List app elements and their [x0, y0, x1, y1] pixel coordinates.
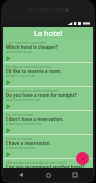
staticText: aid laik tu ri-serv a rum	[6, 74, 36, 78]
button[interactable]: Ameli a cuarto la noche a desean?	[3, 87, 93, 111]
button[interactable]: Play pronunciation	[6, 151, 14, 157]
button[interactable]: Play pronunciation	[6, 103, 14, 109]
staticText: wich ho-tel is chi-per	[6, 50, 32, 54]
staticText: He ido a reservar.	[6, 136, 33, 140]
button[interactable]: He ido a reservar.	[3, 135, 93, 159]
staticText: I have a reservation.	[6, 140, 51, 146]
staticText: Do you have a room for tonight?	[6, 92, 77, 98]
button[interactable]: Play pronunciation	[6, 79, 14, 85]
staticText: du yu hav a rum for tu-nait	[6, 98, 40, 102]
staticText: I'd like to reserve a room.	[6, 68, 62, 74]
button[interactable]: La hotel	[3, 27, 93, 39]
button[interactable]: Back	[12, 168, 30, 182]
staticText: Me deja un reserva el pedirlo.	[6, 64, 52, 68]
staticText: I don't have a reservation.	[6, 116, 64, 122]
staticText: ai dont hav a re-ser-vei-shon	[6, 122, 42, 126]
button[interactable]: Home	[39, 168, 57, 182]
button[interactable]: Me deja un reserva el pedirlo.	[3, 63, 93, 87]
staticText: ¿Qué hotel tiene ese sitio?	[6, 40, 47, 44]
button[interactable]: Recent apps	[66, 168, 84, 182]
staticText: Ameli a cuarto la noche a desean?	[6, 88, 59, 92]
button[interactable]: ¿Me puedes recomendar un otro hotel?	[3, 159, 93, 168]
staticText: Which hotel is cheaper?	[6, 44, 58, 50]
button[interactable]: Play pronunciation	[6, 55, 14, 61]
staticText: ai hav a re-ser-vei-shon	[6, 146, 36, 150]
staticText: Can you recommend another hotel?	[6, 164, 85, 168]
staticText: ¿Me puedes recomendar un otro hotel?	[6, 160, 67, 164]
button[interactable]: ¿Qué hotel tiene ese sitio?	[3, 39, 93, 63]
button[interactable]: Play pronunciation	[6, 127, 14, 133]
staticText: No, sin reservado.	[6, 112, 34, 116]
button[interactable]: No, sin reservado.	[3, 111, 93, 135]
staticText: La hotel	[34, 28, 63, 38]
button[interactable]: Add phrase	[76, 152, 89, 165]
